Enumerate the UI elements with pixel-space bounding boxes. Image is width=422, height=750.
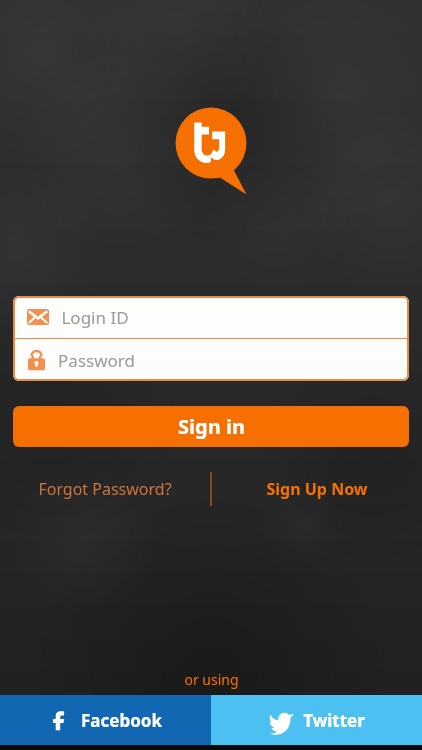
button[interactable]: Forgot Password? xyxy=(0,471,210,507)
other: App logo xyxy=(172,108,250,186)
button[interactable]: Sign in xyxy=(13,406,409,447)
staticText: Facebook xyxy=(81,709,162,732)
staticText: Sign in xyxy=(178,413,245,440)
button[interactable]: Sign Up Now xyxy=(212,471,422,507)
button[interactable]: Login ID xyxy=(13,296,409,338)
button[interactable]: Password xyxy=(13,339,409,381)
staticText: Sign Up Now xyxy=(266,478,368,500)
button[interactable]: Twitter xyxy=(211,695,422,745)
other: Login ID xyxy=(27,309,49,325)
staticText: Twitter xyxy=(303,709,365,732)
staticText: Forgot Password? xyxy=(38,478,172,500)
other: Facebook xyxy=(50,709,72,731)
button[interactable]: Facebook xyxy=(0,695,211,745)
other: Twitter xyxy=(269,708,294,733)
staticText: Login ID xyxy=(61,306,129,329)
staticText: or using xyxy=(184,670,239,689)
other: Password xyxy=(27,349,46,371)
staticText: Password xyxy=(58,349,135,372)
